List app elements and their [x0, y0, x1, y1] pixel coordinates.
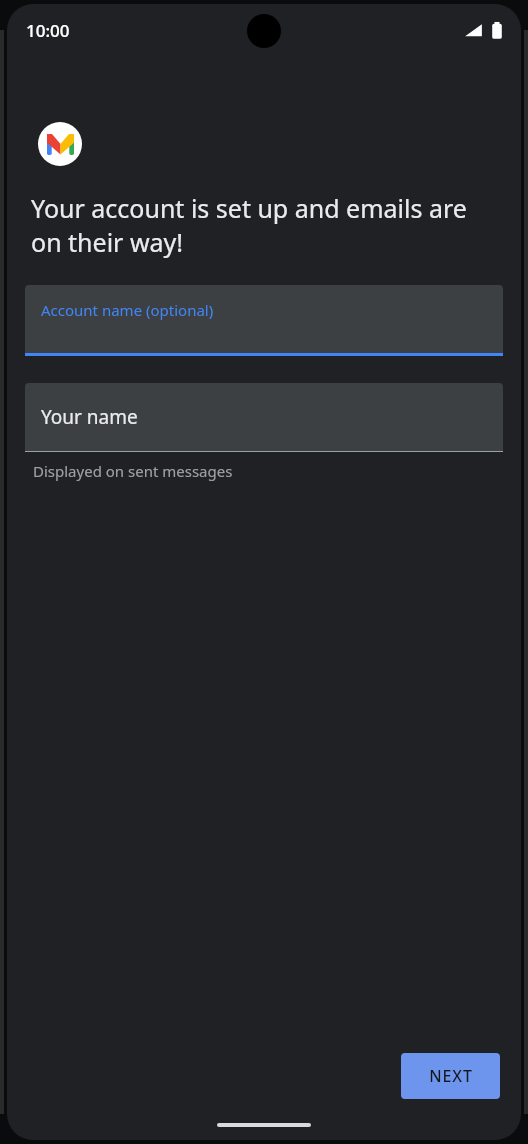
staticText: Your account is set up and emails are on… — [31, 191, 495, 259]
staticText: Displayed on sent messages — [33, 461, 233, 481]
button[interactable]: Your name — [25, 383, 503, 451]
staticText: 10:00 — [26, 19, 70, 42]
other: Gmail — [38, 122, 82, 166]
staticText: NEXT — [429, 1065, 473, 1087]
button[interactable]: Account name (optional) — [25, 285, 503, 356]
staticText: Account name (optional) — [41, 300, 214, 320]
staticText: Your name — [41, 404, 138, 430]
button[interactable]: NEXT — [401, 1053, 500, 1099]
other: Signal strength — [464, 21, 483, 40]
other: Battery — [491, 21, 503, 40]
